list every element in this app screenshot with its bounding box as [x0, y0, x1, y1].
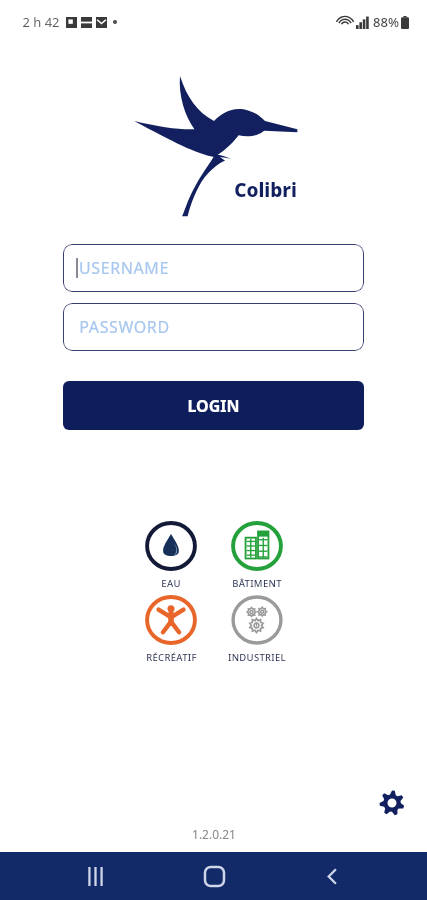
- staticText: 2 h 42: [22, 13, 60, 31]
- button[interactable]: USERNAME: [63, 244, 364, 292]
- button[interactable]: Home: [191, 853, 237, 899]
- staticText: Colibri: [234, 177, 297, 203]
- button[interactable]: Back: [309, 853, 355, 899]
- staticText: 88%: [373, 13, 399, 31]
- staticText: RÉCRÉATIF: [146, 651, 197, 664]
- button[interactable]: RÉCRÉATIF: [128, 594, 214, 664]
- staticText: BÂTIMENT: [232, 577, 282, 590]
- staticText: INDUSTRIEL: [228, 651, 286, 664]
- staticText: EAU: [161, 577, 181, 590]
- staticText: LOGIN: [187, 395, 240, 417]
- button[interactable]: INDUSTRIEL: [214, 594, 300, 664]
- button[interactable]: EAU: [128, 520, 214, 590]
- button[interactable]: BÂTIMENT: [214, 520, 300, 590]
- button[interactable]: Recent apps: [72, 853, 118, 899]
- staticText: PASSWORD: [79, 316, 170, 338]
- button[interactable]: PASSWORD: [63, 303, 364, 351]
- button[interactable]: LOGIN: [63, 381, 364, 430]
- staticText: USERNAME: [79, 257, 169, 279]
- staticText: 1.2.0.21: [192, 826, 236, 842]
- button[interactable]: Settings: [371, 782, 413, 824]
